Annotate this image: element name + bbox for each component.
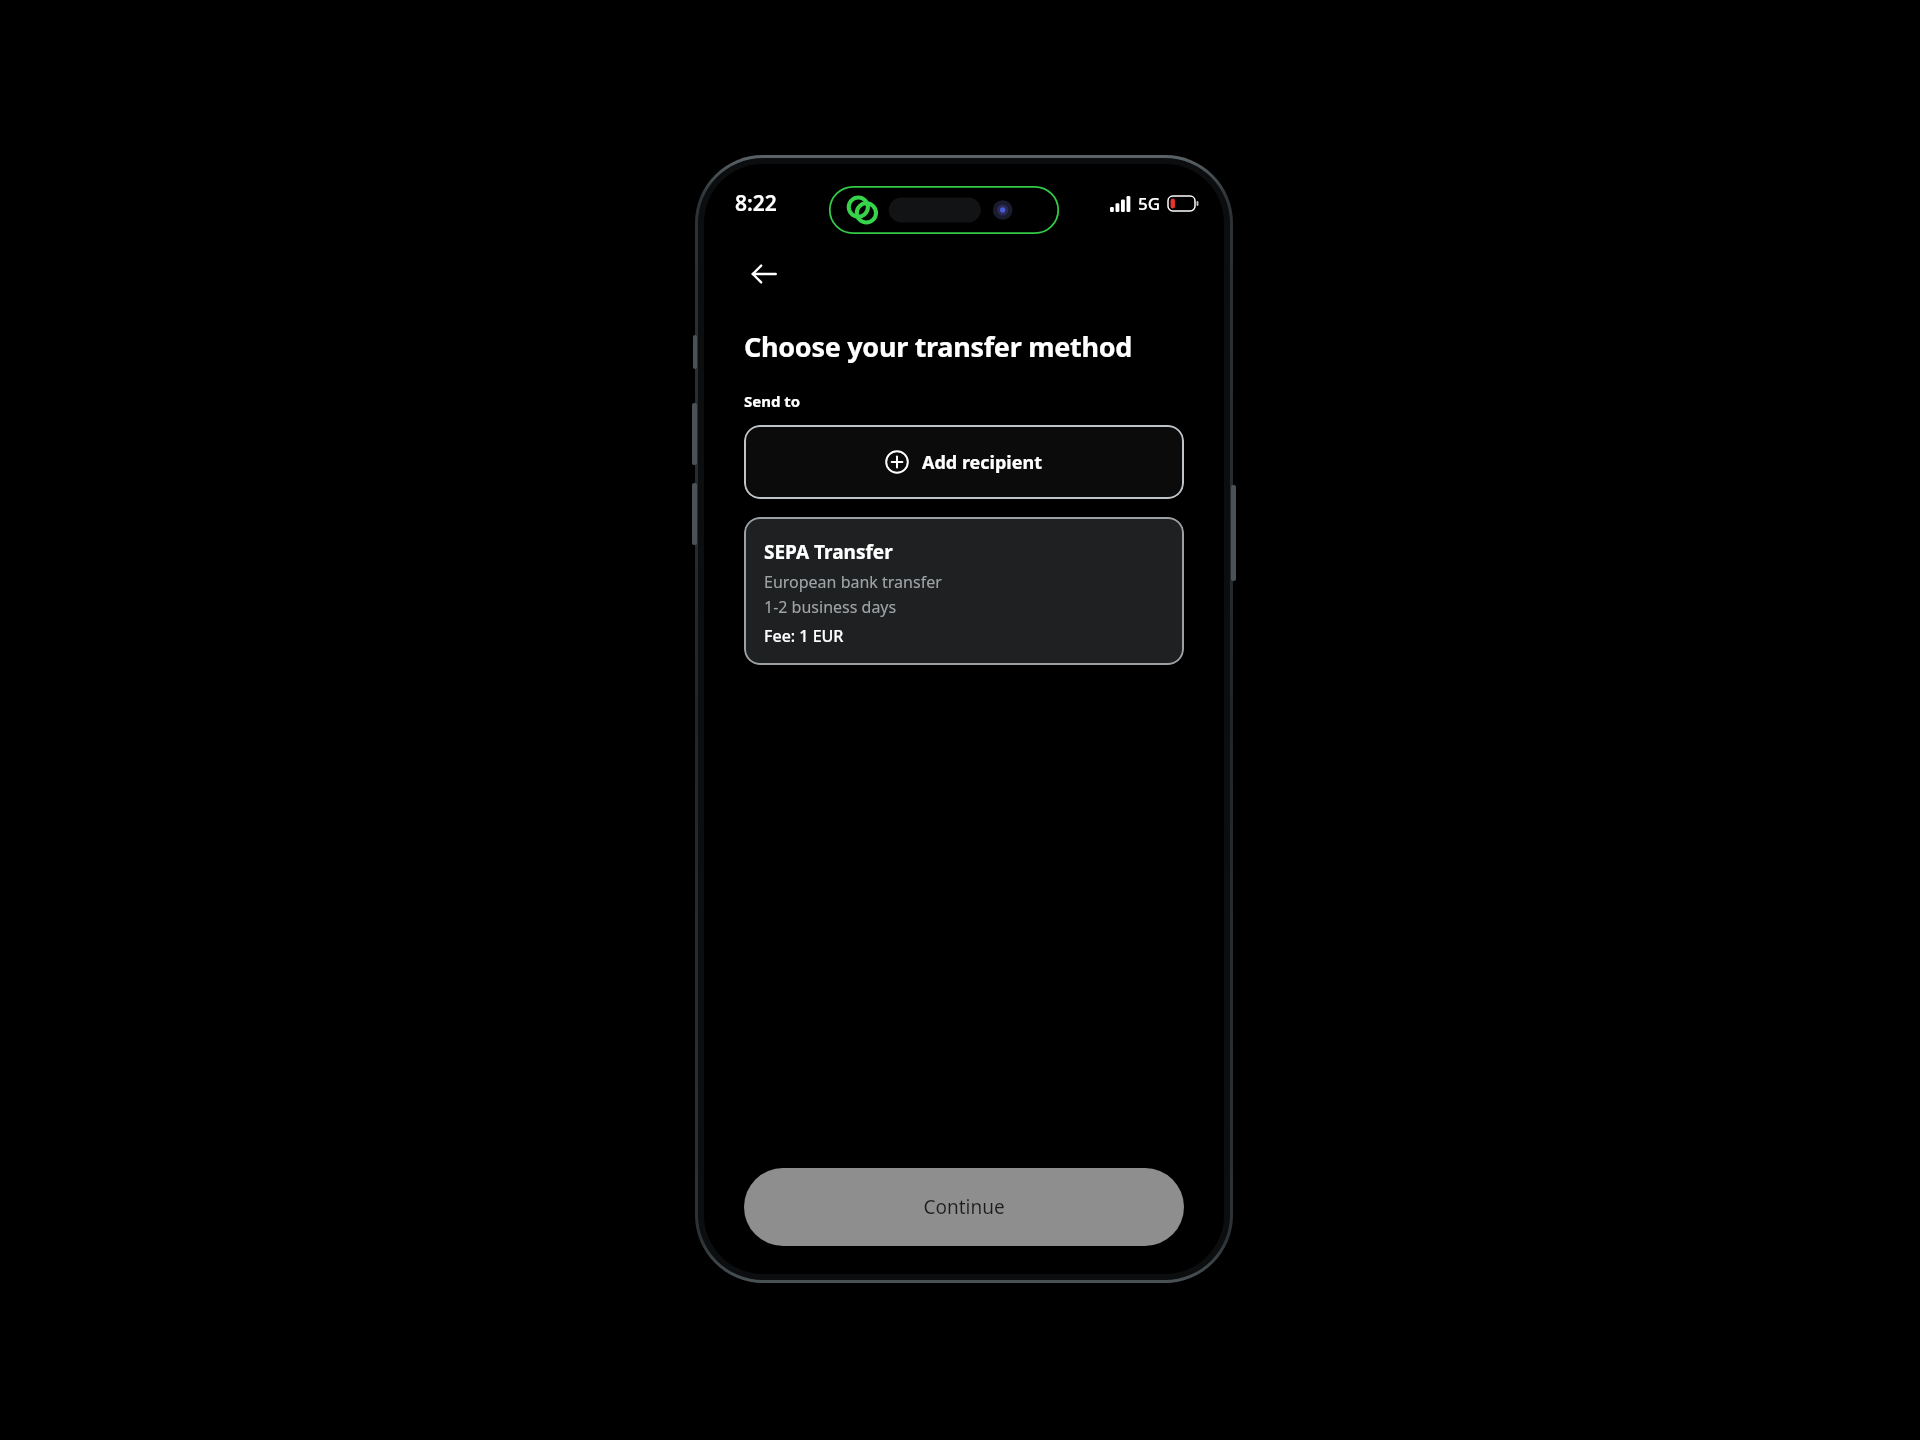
- staticText: Continue: [923, 1194, 1005, 1220]
- button[interactable]: Back: [742, 252, 786, 296]
- button[interactable]: Continue: [744, 1168, 1184, 1246]
- staticText: European bank transfer: [764, 571, 942, 593]
- staticText: Send to: [744, 391, 801, 411]
- button[interactable]: Add recipient: [744, 425, 1184, 499]
- staticText: Fee: 1 EUR: [764, 625, 844, 647]
- staticText: SEPA Transfer: [764, 539, 893, 565]
- button[interactable]: SEPA Transfer: [744, 517, 1184, 665]
- staticText: Choose your transfer method: [744, 328, 1132, 365]
- staticText: 8:22: [735, 189, 777, 218]
- staticText: Add recipient: [922, 450, 1043, 475]
- staticText: 1-2 business days: [764, 596, 897, 618]
- staticText: 5G: [1138, 192, 1161, 215]
